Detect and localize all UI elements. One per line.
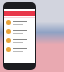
button[interactable] xyxy=(4,36,35,45)
button[interactable] xyxy=(4,27,35,36)
button[interactable] xyxy=(4,45,35,54)
button[interactable] xyxy=(4,18,35,27)
